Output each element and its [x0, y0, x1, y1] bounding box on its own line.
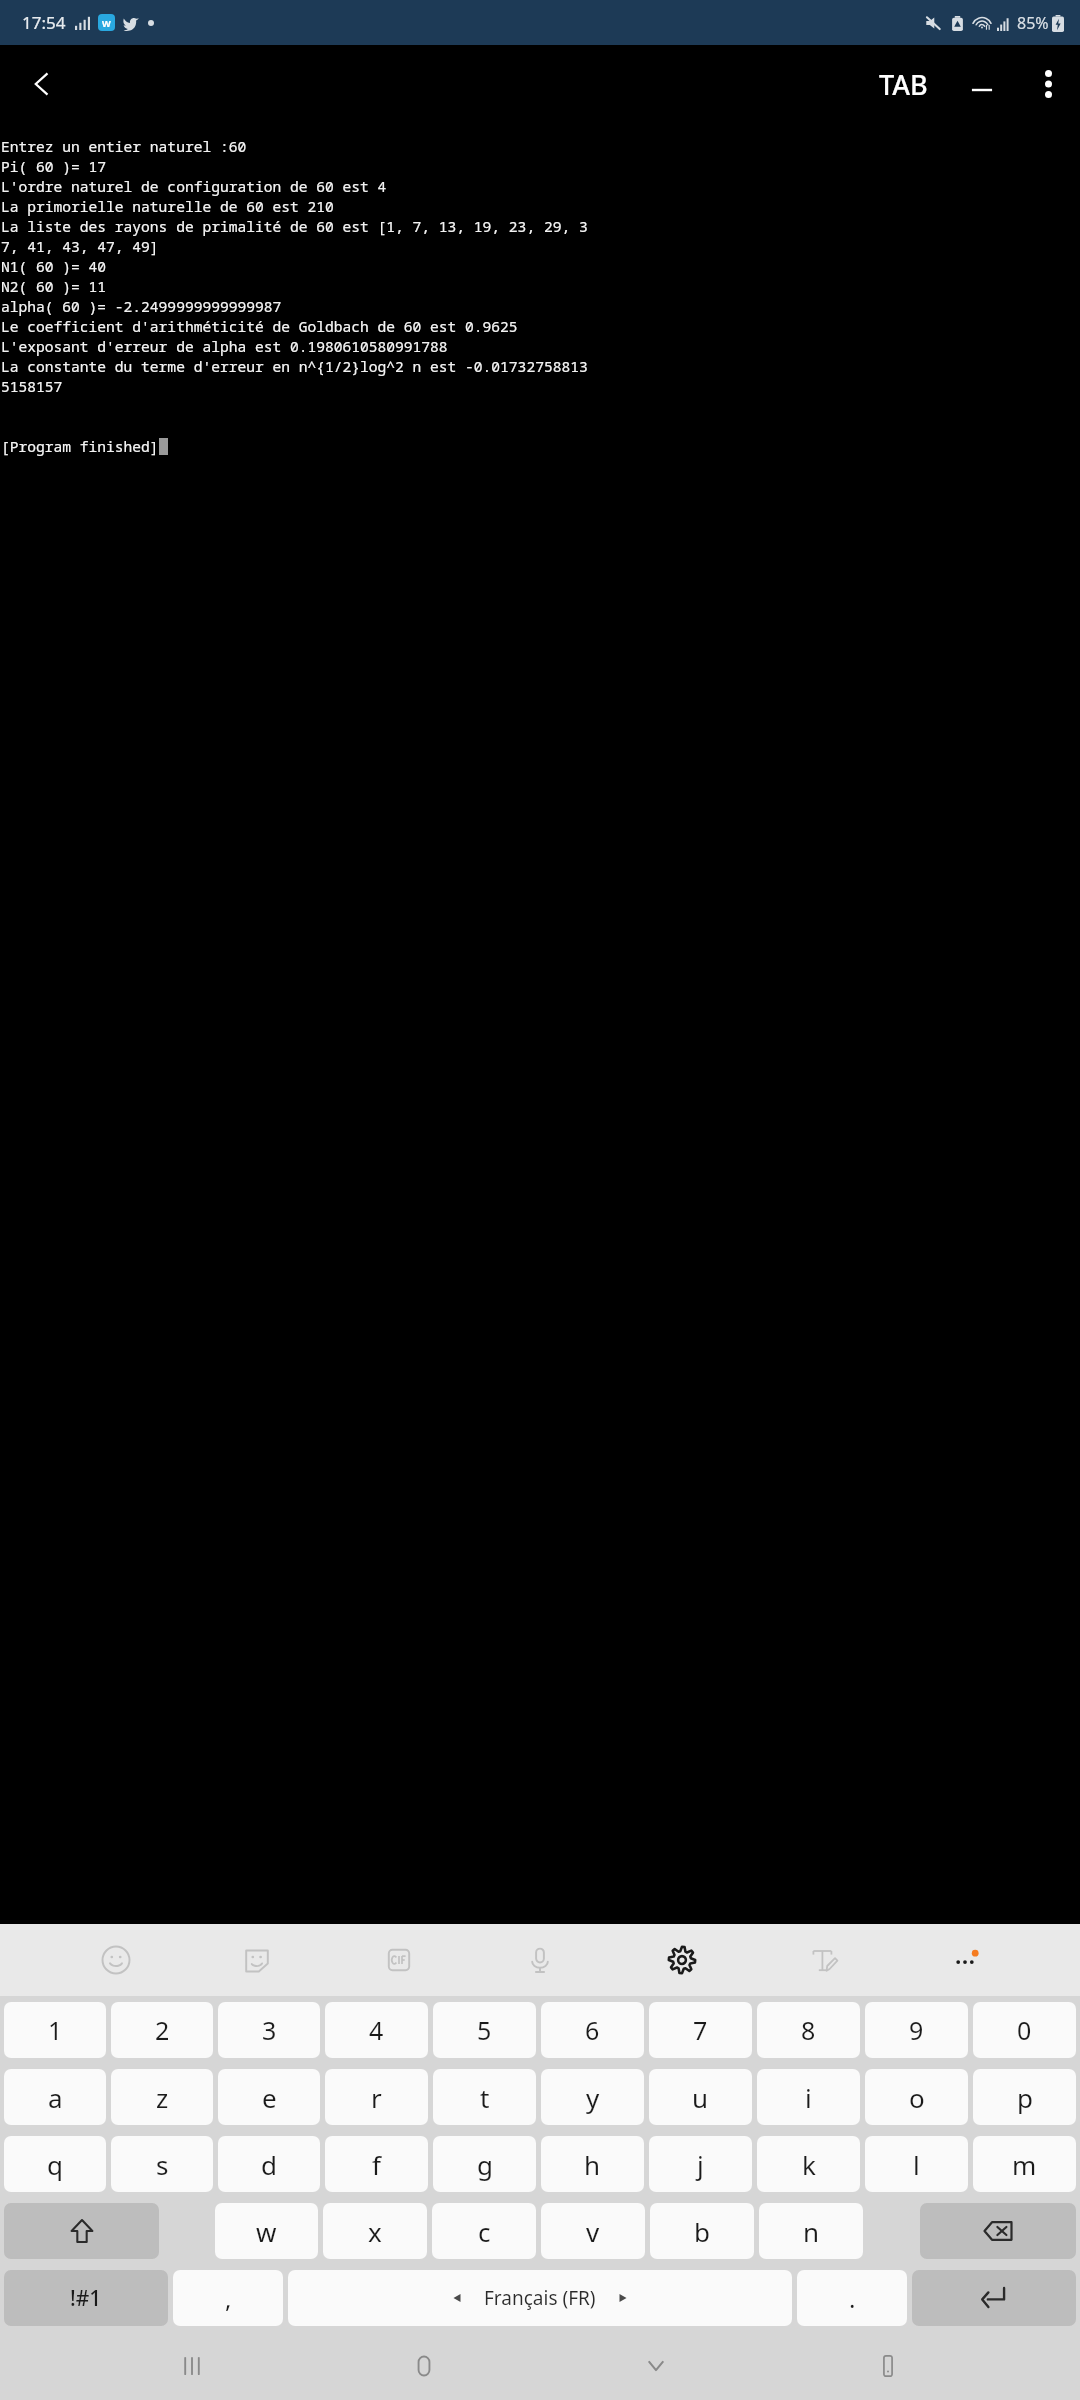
button[interactable]: Backspace — [920, 2203, 1076, 2259]
button[interactable]: Back — [14, 56, 70, 112]
button[interactable]: o — [865, 2069, 968, 2125]
button[interactable]: Home — [384, 2338, 464, 2394]
staticText: L'exposant d'erreur de alpha est 0.19806… — [1, 336, 448, 356]
button[interactable]: s — [111, 2136, 213, 2192]
button[interactable]: a — [4, 2069, 106, 2125]
button[interactable]: q — [4, 2136, 106, 2192]
staticText: 17:54 — [22, 11, 66, 34]
button[interactable]: g — [433, 2136, 536, 2192]
button[interactable]: 6 — [541, 2002, 644, 2058]
staticText: 2 — [155, 2013, 170, 2047]
staticText: o — [909, 2080, 925, 2115]
button[interactable]: e — [218, 2069, 320, 2125]
staticText: La primorielle naturelle de 60 est 210 — [1, 196, 334, 216]
button[interactable]: 3 — [218, 2002, 320, 2058]
button[interactable]: Underscore key — [956, 58, 1008, 110]
button[interactable]: Emoji — [90, 1934, 142, 1986]
staticText: , — [225, 2282, 232, 2315]
staticText: y — [586, 2080, 600, 2115]
button[interactable]: w — [215, 2203, 318, 2259]
staticText: w — [256, 2214, 277, 2249]
staticText: l — [913, 2147, 920, 2182]
staticText: N1( 60 )= 40 — [1, 256, 107, 276]
staticText: v — [586, 2214, 600, 2249]
button[interactable]: m — [973, 2136, 1076, 2192]
button[interactable]: f — [325, 2136, 428, 2192]
staticText: m — [1012, 2147, 1037, 2182]
button[interactable]: Recents — [152, 2338, 232, 2394]
button[interactable]: p — [973, 2069, 1076, 2125]
button[interactable]: 1 — [4, 2002, 106, 2058]
button[interactable]: Settings — [656, 1934, 708, 1986]
staticText: N2( 60 )= 11 — [1, 276, 107, 296]
button[interactable]: Change keyboard — [848, 2338, 928, 2394]
staticText: c — [478, 2214, 491, 2249]
staticText: alpha( 60 )= -2.2499999999999987 — [1, 296, 282, 316]
staticText: a — [48, 2080, 63, 2115]
button[interactable]: Stickers — [231, 1934, 283, 1986]
button[interactable]: Shift — [4, 2203, 159, 2259]
button[interactable]: u — [649, 2069, 752, 2125]
button[interactable]: d — [218, 2136, 320, 2192]
button[interactable]: Enter — [912, 2270, 1076, 2326]
button[interactable]: t — [433, 2069, 536, 2125]
button[interactable]: n — [759, 2203, 863, 2259]
button[interactable]: . — [797, 2270, 907, 2326]
staticText: r — [371, 2080, 382, 2115]
button[interactable]: Français (FR) — [288, 2270, 792, 2326]
staticText: Français (FR) — [484, 2285, 596, 2311]
button[interactable]: Voice input — [514, 1934, 566, 1986]
button[interactable]: b — [650, 2203, 754, 2259]
staticText: Le coefficient d'arithméticité de Goldba… — [1, 316, 518, 336]
staticText: 4 — [369, 2013, 384, 2047]
button[interactable]: j — [649, 2136, 752, 2192]
button[interactable]: !#1 — [4, 2270, 168, 2326]
button[interactable]: More — [939, 1934, 991, 1986]
button[interactable]: , — [173, 2270, 283, 2326]
staticText: !#1 — [70, 2284, 102, 2313]
staticText: 7 — [693, 2013, 708, 2047]
staticText: 0 — [1017, 2013, 1032, 2047]
button[interactable]: GIF — [373, 1934, 425, 1986]
staticText: 6 — [585, 2013, 600, 2047]
staticText: x — [368, 2214, 382, 2249]
staticText: Entrez un entier naturel :60 — [1, 136, 247, 156]
button[interactable]: v — [541, 2203, 645, 2259]
button[interactable]: l — [865, 2136, 968, 2192]
button[interactable]: Hide keyboard — [616, 2338, 696, 2394]
button[interactable]: 8 — [757, 2002, 860, 2058]
staticText: g — [477, 2147, 493, 2182]
staticText: 5158157 — [1, 376, 63, 396]
button[interactable]: 0 — [973, 2002, 1076, 2058]
staticText: f — [372, 2147, 381, 2182]
staticText: k — [802, 2147, 816, 2182]
staticText: b — [694, 2214, 710, 2249]
button[interactable]: TAB — [869, 66, 938, 103]
staticText: 9 — [909, 2013, 924, 2047]
staticText: i — [805, 2080, 812, 2115]
staticText: L'ordre naturel de configuration de 60 e… — [1, 176, 387, 196]
button[interactable]: c — [432, 2203, 536, 2259]
button[interactable]: y — [541, 2069, 644, 2125]
button[interactable]: i — [757, 2069, 860, 2125]
button[interactable]: r — [325, 2069, 428, 2125]
staticText: Pi( 60 )= 17 — [1, 156, 107, 176]
button[interactable]: 5 — [433, 2002, 536, 2058]
button[interactable]: 7 — [649, 2002, 752, 2058]
staticText: q — [47, 2147, 63, 2182]
staticText: 3 — [262, 2013, 277, 2047]
staticText: j — [697, 2147, 704, 2182]
button[interactable]: 9 — [865, 2002, 968, 2058]
staticText: 7, 41, 43, 47, 49] — [1, 236, 159, 256]
button[interactable]: 4 — [325, 2002, 428, 2058]
staticText: . — [849, 2282, 856, 2315]
button[interactable]: Handwriting — [797, 1934, 849, 1986]
button[interactable]: k — [757, 2136, 860, 2192]
button[interactable]: More options — [1022, 58, 1074, 110]
button[interactable]: h — [541, 2136, 644, 2192]
button[interactable]: x — [323, 2203, 427, 2259]
button[interactable]: z — [111, 2069, 213, 2125]
staticText: n — [803, 2214, 820, 2249]
staticText: u — [692, 2080, 709, 2115]
button[interactable]: 2 — [111, 2002, 213, 2058]
